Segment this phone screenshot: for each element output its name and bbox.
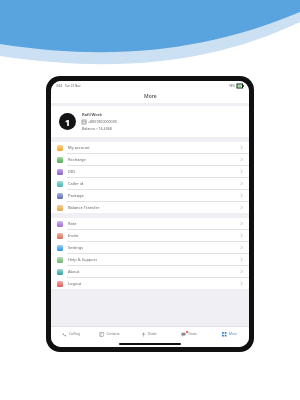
button[interactable]: Logout: [51, 278, 249, 289]
staticText: Help & Support: [68, 257, 97, 262]
staticText: More: [229, 332, 237, 336]
button[interactable]: Package: [51, 190, 249, 201]
button[interactable]: Caller id: [51, 178, 249, 189]
staticText: Balance Transfer: [68, 205, 100, 210]
button[interactable]: Dialer: [129, 327, 169, 341]
button[interactable]: Invite: [51, 230, 249, 241]
button[interactable]: Recharge: [51, 154, 249, 165]
staticText: +8801800000000: [88, 119, 117, 124]
button[interactable]: Rate: [51, 218, 249, 229]
button[interactable]: About: [51, 266, 249, 277]
button[interactable]: My account: [51, 142, 249, 153]
staticText: About: [68, 269, 80, 274]
button[interactable]: Contacts: [90, 327, 129, 341]
button[interactable]: DID: [51, 166, 249, 177]
button[interactable]: Chats: [169, 327, 209, 341]
staticText: Call log: [69, 332, 80, 336]
staticText: Logout: [68, 281, 82, 286]
button[interactable]: Help & Support: [51, 254, 249, 265]
staticText: More: [144, 93, 157, 100]
staticText: 1: [65, 116, 71, 128]
staticText: Settings: [68, 245, 84, 250]
staticText: Contacts: [106, 332, 120, 336]
staticText: Rate: [68, 221, 77, 226]
button[interactable]: Call log: [51, 327, 90, 341]
staticText: 98%: [229, 84, 235, 88]
staticText: Package: [68, 193, 84, 198]
staticText: Tue 23 Nov: [65, 84, 81, 88]
button[interactable]: Balance Transfer: [51, 202, 249, 213]
staticText: Invite: [68, 233, 79, 238]
staticText: Dialer: [148, 332, 157, 336]
button[interactable]: More: [209, 327, 249, 341]
staticText: Balance ৳ 14.4068: [82, 126, 112, 131]
staticText: 3:54: [56, 84, 62, 88]
button[interactable]: Settings: [51, 242, 249, 253]
button[interactable]: 1: [51, 106, 249, 137]
staticText: DID: [68, 169, 76, 174]
staticText: Caller id: [68, 181, 84, 186]
staticText: My account: [68, 145, 90, 150]
staticText: Recharge: [68, 157, 86, 162]
staticText: Chats: [188, 332, 197, 336]
staticText: Rafi/Work: [82, 112, 102, 117]
